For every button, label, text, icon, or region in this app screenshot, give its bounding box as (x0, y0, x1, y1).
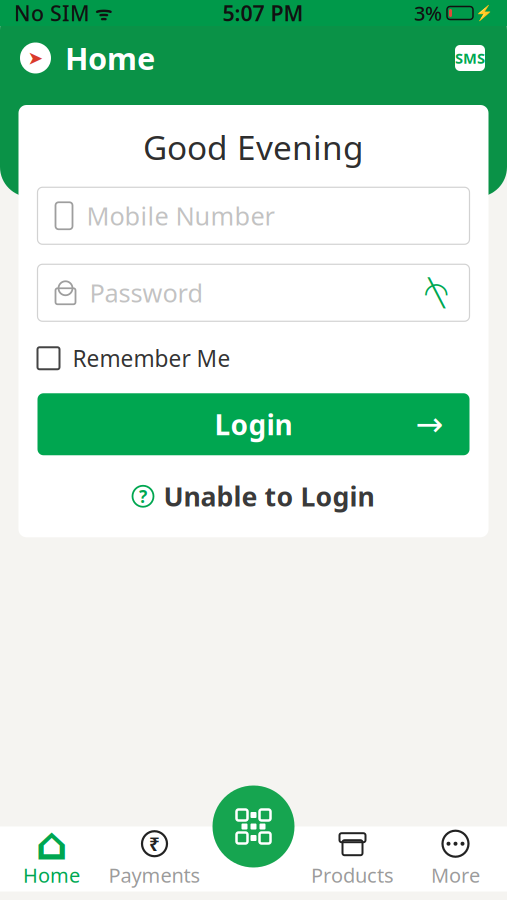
button[interactable]: Home (20, 38, 155, 78)
staticText: ₹ (149, 831, 160, 856)
staticText: ➤ (27, 47, 43, 69)
staticText: Home (65, 38, 155, 78)
button[interactable]: SMS (453, 41, 487, 75)
button[interactable]: Remember Me (18, 341, 488, 375)
staticText: Login (214, 406, 292, 443)
staticText: Good Evening (143, 125, 364, 169)
staticText: ᯤ (90, 1, 112, 25)
staticText: ? (139, 485, 147, 508)
staticText: 5:07 PM (222, 0, 303, 27)
staticText: Payments (108, 862, 200, 888)
staticText: ╲ (428, 278, 444, 308)
staticText: ⌂ (35, 818, 67, 869)
staticText: → (415, 405, 443, 443)
staticText: Products (311, 862, 394, 888)
staticText: Unable to Login (163, 479, 374, 514)
staticText: 3% (414, 0, 442, 26)
button[interactable]: ? (37, 479, 469, 513)
staticText: SMS (455, 48, 485, 68)
button[interactable]: More (404, 828, 507, 890)
staticText: No SIM (14, 0, 90, 27)
staticText: ◠ (423, 276, 449, 309)
staticText: Password (89, 276, 203, 309)
button[interactable]: Scan QR code (212, 785, 294, 867)
button[interactable]: Show password (421, 279, 451, 307)
staticText: ⚡ (475, 5, 493, 21)
staticText: Mobile Number (86, 199, 274, 232)
button[interactable]: Products (301, 828, 404, 890)
button[interactable]: ⌂ (0, 828, 103, 890)
button[interactable]: Login (37, 393, 469, 455)
staticText: Home (23, 862, 80, 888)
button[interactable]: ₹ (103, 828, 206, 890)
staticText: Remember Me (72, 343, 230, 373)
staticText: More (431, 862, 480, 888)
